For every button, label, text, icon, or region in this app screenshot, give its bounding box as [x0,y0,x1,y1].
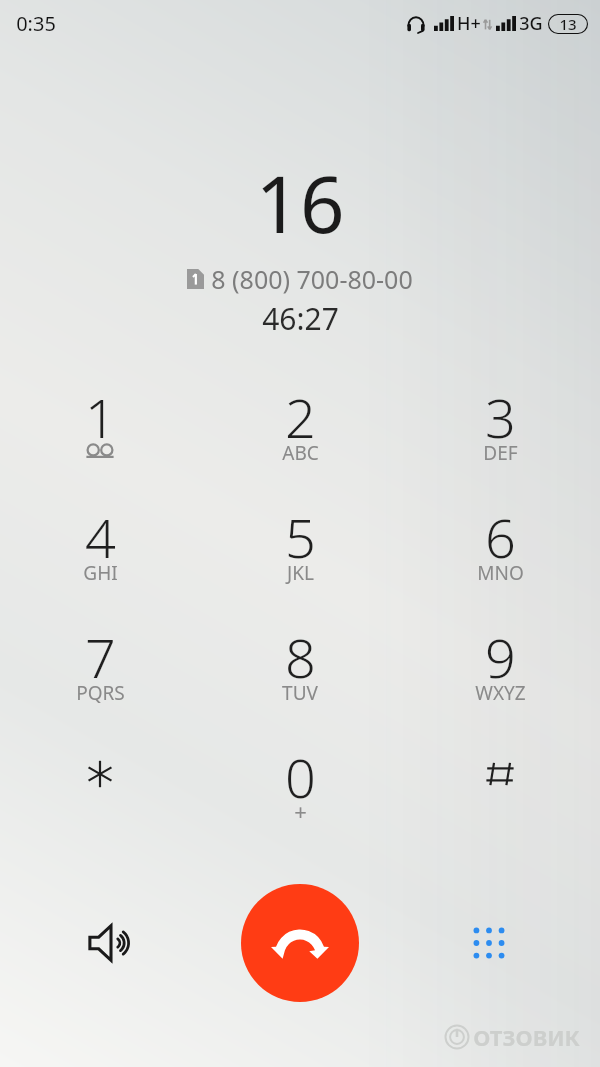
staticText: H+ [457,11,481,36]
staticText: DEF [483,440,518,466]
staticText: 16 [255,150,345,256]
button[interactable]: 3 [400,378,600,498]
staticText: 4 [85,500,116,574]
staticText: 6 [485,500,516,574]
staticText: PQRS [76,680,125,706]
staticText: JKL [287,560,314,586]
staticText: 0:35 [16,10,56,37]
staticText: 5 [285,500,316,574]
button[interactable]: 6 [400,498,600,618]
staticText: 3G [519,11,543,36]
staticText: 13 [559,14,577,34]
staticText: 9 [485,620,516,694]
staticText: ABC [282,440,319,466]
button[interactable]: 0 [200,738,400,858]
staticText: MNO [477,560,524,586]
button[interactable]: End call [241,884,359,1002]
staticText: 2 [285,380,316,454]
button[interactable]: 1 [0,378,200,498]
button[interactable]: 5 [200,498,400,618]
staticText: 0 [285,740,316,814]
staticText: 8 (800) 700-80-00 [211,262,413,296]
staticText: TUV [282,680,318,706]
button[interactable]: 4 [0,498,200,618]
button[interactable] [400,738,600,858]
staticText: WXYZ [475,680,526,706]
staticText: 3 [485,380,516,454]
button[interactable]: 2 [200,378,400,498]
staticText: 46:27 [262,298,339,339]
staticText: 1 [85,380,116,454]
button[interactable] [0,738,200,858]
staticText: + [294,796,307,826]
staticText: 8 [285,620,316,694]
staticText: GHI [83,560,118,586]
button[interactable]: Dialpad [454,908,524,978]
button[interactable]: 9 [400,618,600,738]
staticText: ОТЗОВИК [473,1022,580,1052]
button[interactable]: Speaker [76,908,146,978]
staticText: 7 [85,620,116,694]
button[interactable]: 8 [200,618,400,738]
button[interactable]: 7 [0,618,200,738]
